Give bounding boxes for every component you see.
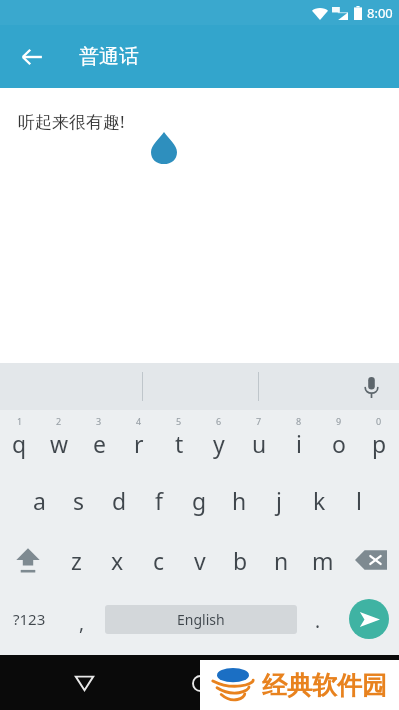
staticText: , xyxy=(79,610,85,636)
button[interactable]: 2 xyxy=(39,410,79,470)
button[interactable]: Send xyxy=(349,599,389,639)
staticText: h xyxy=(232,485,247,516)
button[interactable]: n xyxy=(261,530,302,590)
button[interactable]: v xyxy=(179,530,220,590)
staticText: z xyxy=(71,545,82,576)
button[interactable]: Back xyxy=(62,661,106,705)
staticText: o xyxy=(332,428,346,459)
button[interactable]: 4 xyxy=(119,410,159,470)
staticText: 1 xyxy=(17,415,23,427)
button[interactable]: c xyxy=(138,530,179,590)
button[interactable]: k xyxy=(299,470,339,530)
staticText: t xyxy=(175,428,184,459)
staticText: x xyxy=(111,545,124,576)
button[interactable]: 5 xyxy=(159,410,199,470)
staticText: 8 xyxy=(296,415,302,427)
button[interactable]: 1 xyxy=(0,410,39,470)
staticText: 7 xyxy=(256,415,262,427)
button[interactable]: b xyxy=(220,530,261,590)
staticText: w xyxy=(50,428,69,459)
staticText: . xyxy=(315,608,321,634)
button[interactable]: ?123 xyxy=(0,590,58,648)
button[interactable]: Home xyxy=(178,661,222,705)
staticText: ?123 xyxy=(13,609,46,629)
staticText: 9 xyxy=(336,415,342,427)
button[interactable]: j xyxy=(259,470,299,530)
staticText: r xyxy=(134,428,144,459)
button[interactable]: English xyxy=(105,605,297,634)
button[interactable]: l xyxy=(339,470,379,530)
staticText: j xyxy=(276,485,282,516)
staticText: 4 xyxy=(136,415,142,427)
staticText: m xyxy=(312,545,334,576)
staticText: 5 xyxy=(176,415,182,427)
staticText: 3 xyxy=(96,415,102,427)
staticText: b xyxy=(233,545,248,576)
button[interactable]: x xyxy=(97,530,138,590)
button[interactable]: 6 xyxy=(199,410,239,470)
button[interactable]: 3 xyxy=(79,410,119,470)
staticText: i xyxy=(296,428,302,459)
staticText: 经典软件园 xyxy=(262,670,387,701)
button[interactable]: z xyxy=(56,530,97,590)
button[interactable]: . xyxy=(297,590,339,648)
button[interactable]: 0 xyxy=(359,410,399,470)
staticText: g xyxy=(192,485,207,516)
staticText: u xyxy=(252,428,267,459)
staticText: e xyxy=(93,428,106,459)
button[interactable]: a xyxy=(20,470,59,530)
button[interactable]: g xyxy=(179,470,219,530)
button[interactable]: Voice input xyxy=(351,367,391,407)
staticText: 8:00 xyxy=(367,4,393,22)
staticText: 6 xyxy=(216,415,222,427)
staticText: 普通话 xyxy=(79,44,139,69)
staticText: l xyxy=(356,485,362,516)
staticText: k xyxy=(313,485,326,516)
button[interactable]: m xyxy=(302,530,343,590)
button[interactable]: h xyxy=(219,470,259,530)
button[interactable]: , xyxy=(58,590,105,648)
staticText: 0 xyxy=(376,415,382,427)
staticText: q xyxy=(12,428,27,459)
staticText: c xyxy=(153,545,165,576)
staticText: 听起来很有趣! xyxy=(18,110,125,133)
staticText: n xyxy=(274,545,289,576)
staticText: f xyxy=(155,485,163,516)
button[interactable]: 9 xyxy=(319,410,359,470)
staticText: v xyxy=(194,545,206,576)
staticText: p xyxy=(372,428,387,459)
button[interactable]: Shift xyxy=(0,530,56,590)
button[interactable]: 7 xyxy=(239,410,279,470)
staticText: y xyxy=(213,428,225,459)
staticText: 2 xyxy=(56,415,62,427)
button[interactable]: Backspace xyxy=(343,530,399,590)
button[interactable]: 8 xyxy=(279,410,319,470)
staticText: a xyxy=(33,485,46,516)
button[interactable]: Back xyxy=(10,35,54,79)
button[interactable]: f xyxy=(139,470,179,530)
staticText: d xyxy=(112,485,127,516)
button[interactable]: s xyxy=(59,470,99,530)
button[interactable]: d xyxy=(99,470,139,530)
staticText: English xyxy=(177,610,225,629)
staticText: s xyxy=(73,485,85,516)
